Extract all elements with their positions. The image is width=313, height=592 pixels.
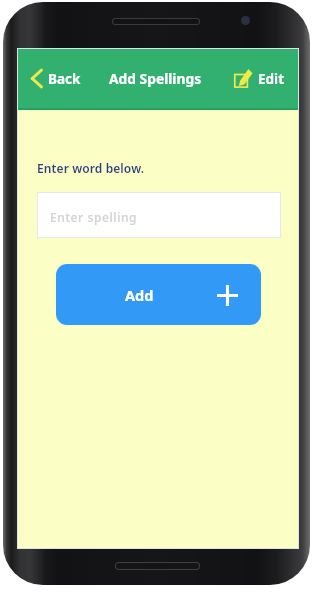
button[interactable]: Add xyxy=(56,264,261,325)
staticText: Back xyxy=(48,70,81,88)
staticText: Edit xyxy=(258,70,284,88)
button[interactable]: Enter spelling xyxy=(37,192,281,238)
staticText: Add Spellings xyxy=(109,69,202,88)
staticText: Enter word below. xyxy=(37,160,145,176)
button[interactable]: Edit xyxy=(234,65,284,92)
other: Back xyxy=(30,68,43,89)
staticText: Enter spelling xyxy=(50,209,138,225)
other: Edit xyxy=(234,68,251,89)
staticText: Add xyxy=(125,285,154,305)
button[interactable]: Back xyxy=(30,65,81,92)
